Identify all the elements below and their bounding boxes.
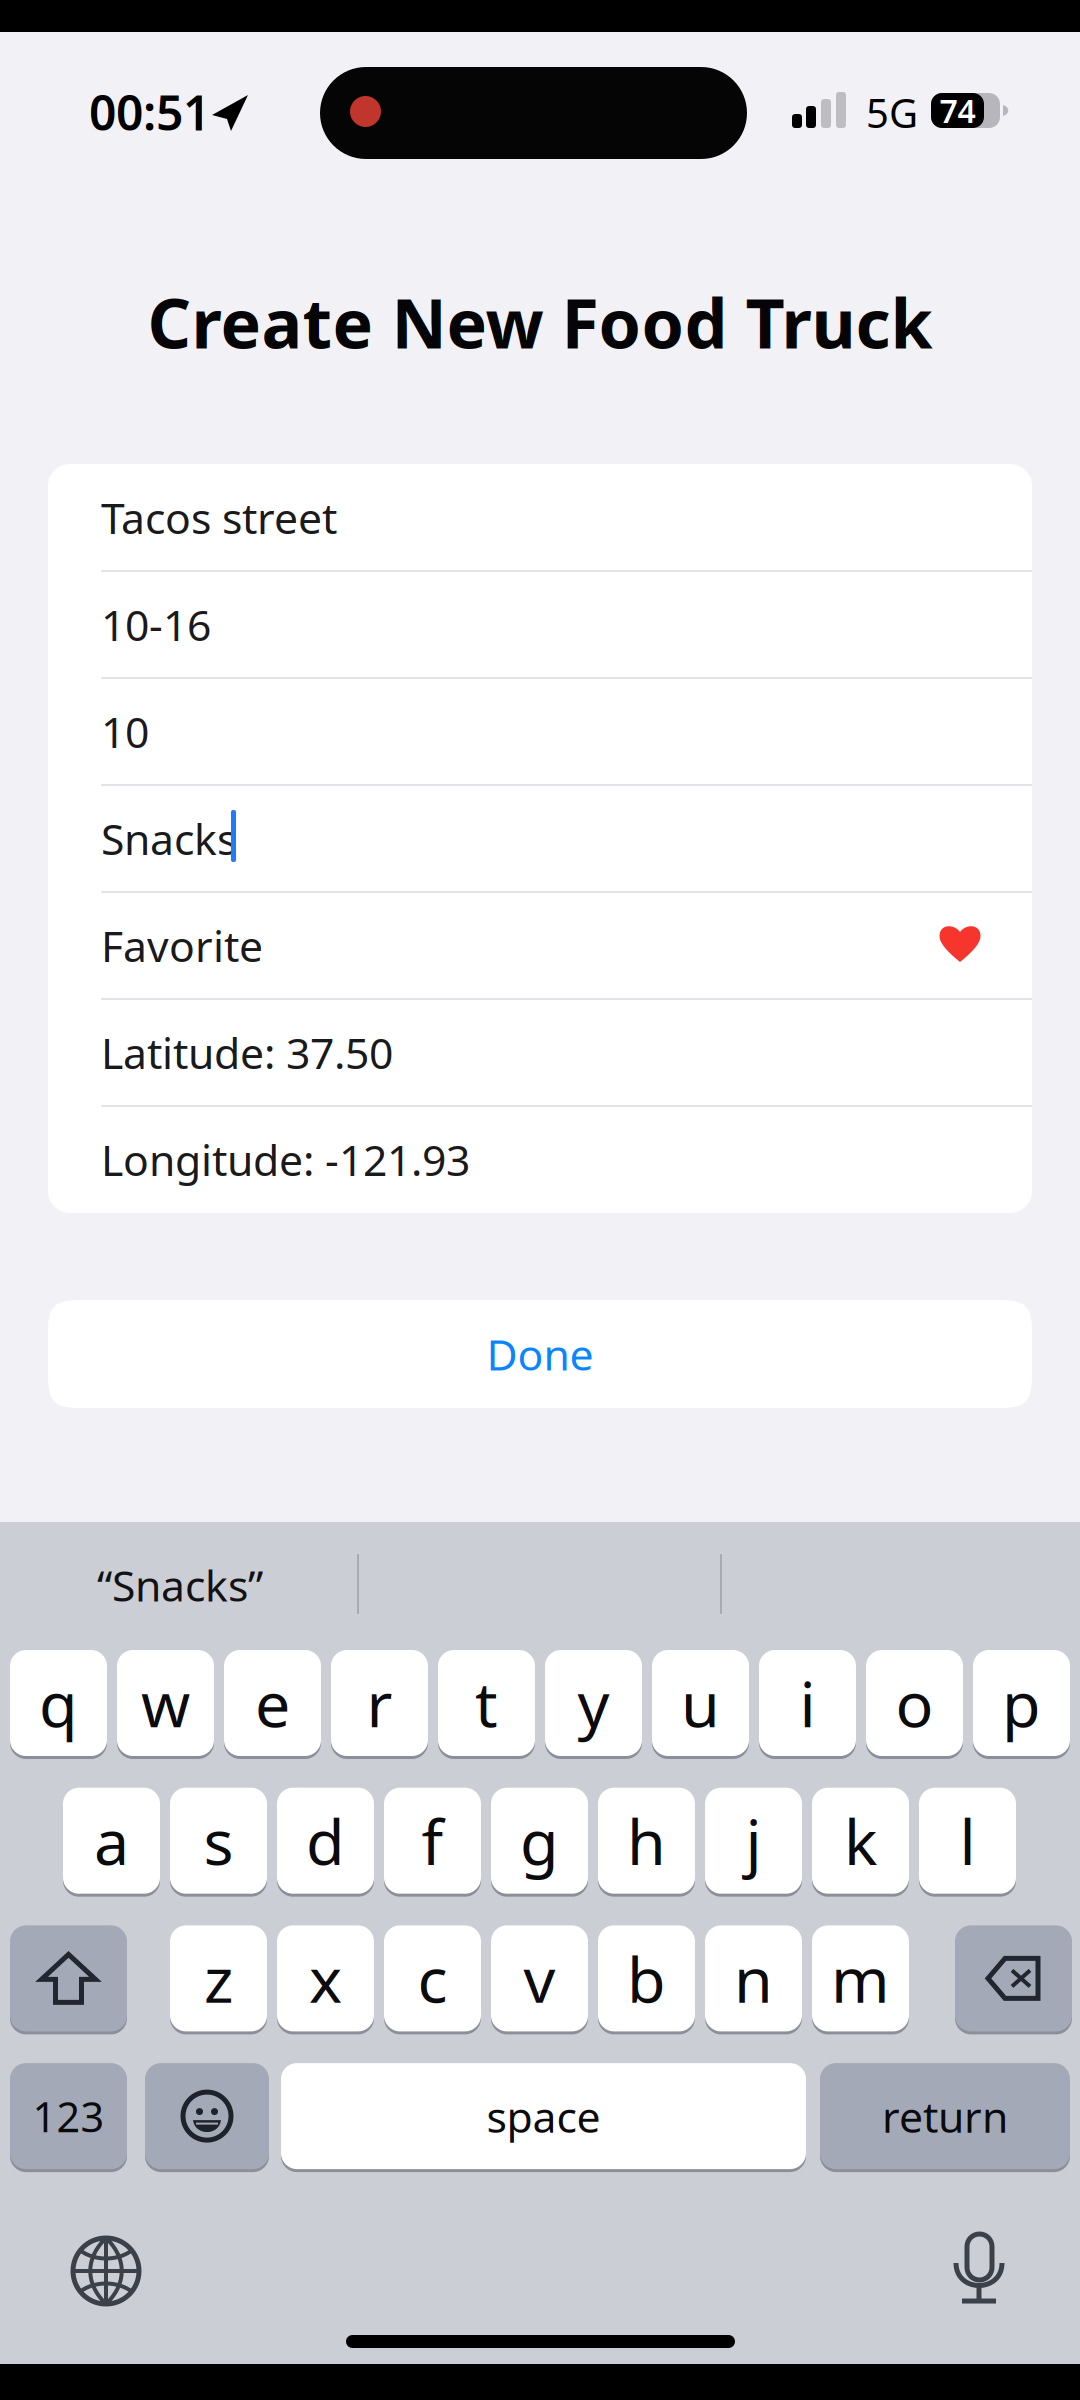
- staticText: d: [306, 1799, 345, 1882]
- staticText: k: [844, 1799, 877, 1882]
- button[interactable]: f: [384, 1788, 481, 1897]
- staticText: a: [94, 1799, 129, 1882]
- button[interactable]: a: [63, 1788, 160, 1897]
- staticText: t: [475, 1661, 498, 1745]
- staticText: Tacos street: [101, 489, 337, 546]
- button[interactable]: v: [491, 1925, 588, 2034]
- staticText: 00:51: [89, 80, 210, 144]
- staticText: f: [421, 1799, 443, 1882]
- staticText: Favorite: [101, 917, 263, 974]
- staticText: Longitude: -121.93: [101, 1131, 470, 1188]
- button[interactable]: u: [652, 1650, 749, 1759]
- button[interactable]: Done: [48, 1300, 1032, 1408]
- button[interactable]: c: [384, 1925, 481, 2034]
- staticText: y: [577, 1661, 609, 1745]
- staticText: 10: [101, 703, 149, 760]
- staticText: 74: [939, 89, 975, 132]
- button[interactable]: space: [281, 2063, 806, 2172]
- button[interactable]: Next keyboard: [69, 2234, 143, 2308]
- staticText: z: [204, 1937, 233, 2020]
- button[interactable]: s: [170, 1788, 267, 1897]
- staticText: 5G: [866, 86, 918, 139]
- staticText: Done: [486, 1326, 593, 1382]
- staticText: p: [1002, 1661, 1041, 1745]
- staticText: b: [627, 1937, 666, 2020]
- button[interactable]: q: [10, 1650, 107, 1759]
- staticText: j: [745, 1799, 761, 1882]
- button[interactable]: g: [491, 1788, 588, 1897]
- button[interactable]: d: [277, 1788, 374, 1897]
- staticText: e: [255, 1661, 290, 1745]
- staticText: return: [882, 2088, 1008, 2144]
- button[interactable]: m: [812, 1925, 909, 2034]
- staticText: v: [523, 1937, 555, 2020]
- staticText: u: [681, 1661, 720, 1745]
- button[interactable]: 123: [10, 2063, 127, 2172]
- staticText: o: [895, 1661, 933, 1745]
- staticText: n: [734, 1937, 773, 2020]
- staticText: c: [417, 1937, 447, 2020]
- staticText: x: [309, 1937, 342, 2020]
- button[interactable]: “Snacks”: [10, 1540, 350, 1630]
- staticText: Latitude: 37.50: [101, 1024, 393, 1081]
- button[interactable]: t: [438, 1650, 535, 1759]
- staticText: l: [959, 1799, 975, 1882]
- staticText: i: [799, 1661, 815, 1745]
- staticText: 123: [32, 2089, 104, 2144]
- button[interactable]: Emoji keyboard: [145, 2063, 269, 2172]
- button[interactable]: r: [331, 1650, 428, 1759]
- staticText: w: [141, 1661, 190, 1745]
- button[interactable]: Delete: [955, 1925, 1072, 2034]
- button[interactable]: return: [820, 2063, 1070, 2172]
- button[interactable]: Shift: [10, 1925, 127, 2034]
- button[interactable]: x: [277, 1925, 374, 2034]
- staticText: 10-16: [101, 596, 211, 653]
- button[interactable]: y: [545, 1650, 642, 1759]
- staticText: r: [366, 1661, 392, 1745]
- button[interactable]: Dictation: [951, 2231, 1007, 2305]
- staticText: “Snacks”: [97, 1557, 263, 1613]
- staticText: Create New Food Truck: [147, 277, 932, 367]
- staticText: m: [831, 1937, 890, 2020]
- button[interactable]: p: [973, 1650, 1070, 1759]
- staticText: Snacks: [101, 810, 237, 867]
- staticText: space: [486, 2088, 600, 2144]
- button[interactable]: z: [170, 1925, 267, 2034]
- button[interactable]: o: [866, 1650, 963, 1759]
- button[interactable]: j: [705, 1788, 802, 1897]
- button[interactable]: b: [598, 1925, 695, 2034]
- button[interactable]: h: [598, 1788, 695, 1897]
- button[interactable]: n: [705, 1925, 802, 2034]
- button[interactable]: w: [117, 1650, 214, 1759]
- button[interactable]: l: [919, 1788, 1016, 1897]
- button[interactable]: e: [224, 1650, 321, 1759]
- staticText: g: [520, 1799, 559, 1882]
- button[interactable]: k: [812, 1788, 909, 1897]
- staticText: q: [39, 1661, 78, 1745]
- button[interactable]: i: [759, 1650, 856, 1759]
- staticText: s: [203, 1799, 233, 1882]
- staticText: h: [627, 1799, 666, 1882]
